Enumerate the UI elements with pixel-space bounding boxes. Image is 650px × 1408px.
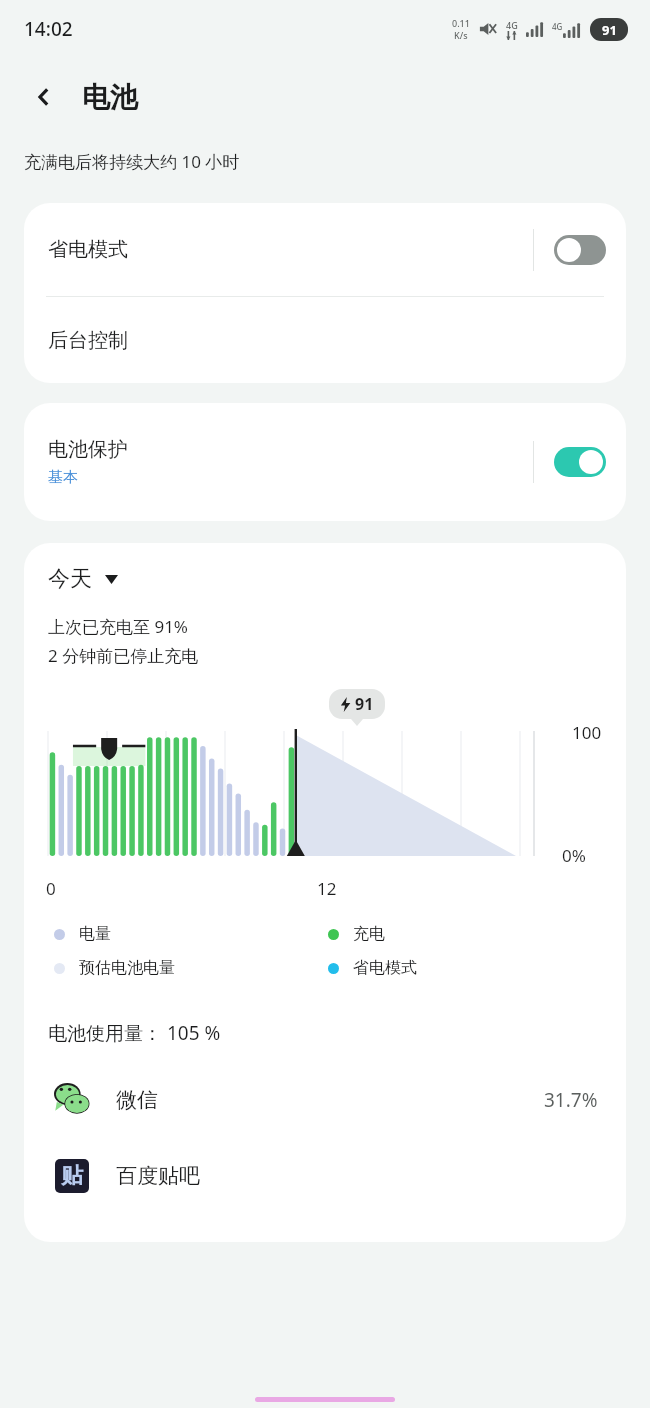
staticText: 省电模式: [48, 237, 533, 262]
staticText: 后台控制: [48, 328, 128, 353]
staticText: 91: [355, 693, 374, 715]
button[interactable]: Back: [22, 75, 66, 119]
staticText: 4G: [506, 19, 518, 31]
staticText: 100: [572, 721, 602, 744]
staticText: 微信: [116, 1087, 544, 1113]
button[interactable]: Toggle on: [554, 447, 606, 477]
button[interactable]: 今天: [48, 565, 118, 593]
button[interactable]: 后台控制: [24, 297, 626, 383]
staticText: 4G: [552, 21, 563, 32]
staticText: 百度贴吧: [116, 1163, 598, 1189]
staticText: 14:02: [24, 16, 73, 42]
staticText: 31.7%: [544, 1087, 598, 1113]
button[interactable]: Toggle off: [554, 235, 606, 265]
staticText: 充满电后将持续大约 10 小时: [24, 150, 240, 173]
button[interactable]: 微信: [24, 1074, 626, 1126]
staticText: 电池: [82, 80, 138, 115]
staticText: 预估电池电量: [79, 958, 175, 978]
staticText: 上次已充电至 91%: [48, 615, 188, 638]
staticText: 基本: [48, 468, 78, 487]
staticText: 0.11: [452, 17, 470, 29]
staticText: K/s: [454, 29, 468, 41]
staticText: 省电模式: [353, 958, 417, 978]
staticText: 电量: [79, 924, 111, 944]
button[interactable]: 电池保护: [24, 403, 626, 521]
button[interactable]: 贴: [24, 1150, 626, 1202]
staticText: 0%: [562, 844, 586, 867]
staticText: 0: [46, 877, 56, 900]
staticText: 91: [602, 21, 617, 39]
staticText: 今天: [48, 565, 92, 593]
staticText: 电池保护: [48, 437, 128, 462]
staticText: 充电: [353, 924, 385, 944]
button[interactable]: 省电模式: [24, 203, 626, 296]
staticText: 12: [317, 877, 337, 900]
staticText: 电池使用量： 105 %: [48, 1020, 221, 1046]
staticText: 2 分钟前已停止充电: [48, 644, 199, 667]
staticText: 贴: [61, 1162, 83, 1190]
